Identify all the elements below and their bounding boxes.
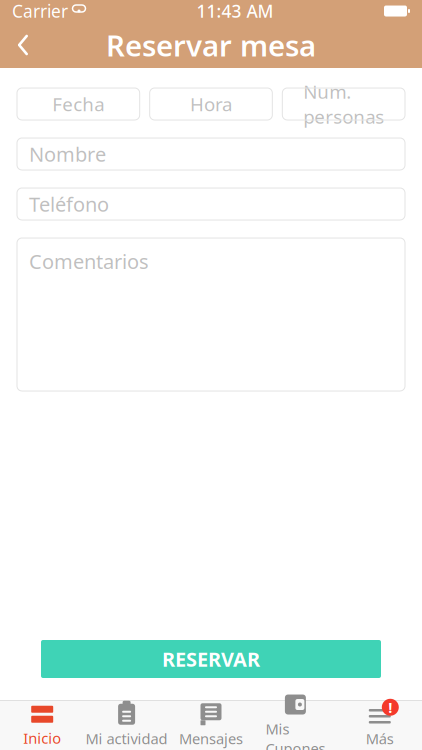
button[interactable]: RESERVAR	[41, 640, 381, 678]
button[interactable]: Comentarios	[17, 238, 405, 391]
button[interactable]: Nombre	[17, 138, 405, 170]
staticText: !	[388, 697, 392, 717]
staticText: Mis Cupones	[265, 719, 325, 750]
button[interactable]: Mi actividad	[84, 700, 169, 750]
staticText: Reservar mesa	[106, 25, 316, 64]
button[interactable]: Mis Cupones	[253, 700, 338, 750]
staticText: 11:43 AM	[196, 0, 273, 22]
staticText: Hora	[190, 92, 232, 116]
staticText: RESERVAR	[162, 646, 260, 672]
button[interactable]: Fecha	[17, 88, 140, 120]
staticText: Fecha	[52, 92, 104, 116]
staticText: Nombre	[29, 141, 106, 167]
staticText: Inicio	[23, 728, 61, 748]
button[interactable]: !	[338, 700, 422, 750]
staticText: Más	[366, 729, 394, 748]
staticText: Carrier	[12, 0, 68, 22]
button[interactable]: Hora	[150, 88, 272, 120]
button[interactable]: Teléfono	[17, 188, 405, 220]
button[interactable]: Num. personas	[282, 88, 405, 120]
button[interactable]: Inicio	[0, 700, 84, 750]
staticText: Num. personas	[303, 79, 384, 129]
staticText: Mensajes	[179, 729, 243, 748]
staticText: Teléfono	[29, 191, 109, 217]
button[interactable]: Mensajes	[169, 700, 253, 750]
staticText: Mi actividad	[86, 729, 168, 748]
staticText: Comentarios	[29, 248, 149, 275]
button[interactable]: Back	[6, 23, 40, 67]
